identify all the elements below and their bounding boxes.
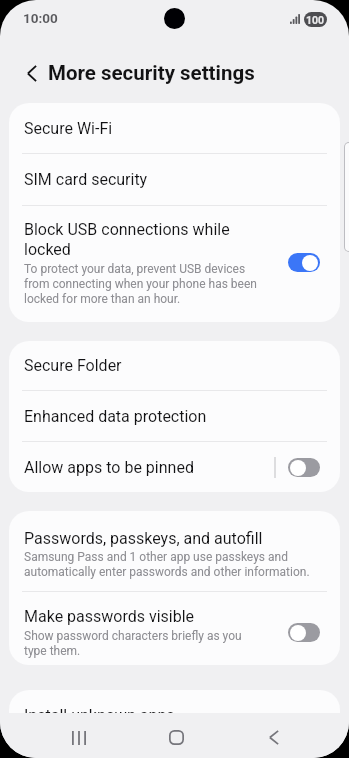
staticText: To protect your data, prevent USB device… (24, 261, 267, 306)
button[interactable]: Back (225, 713, 323, 758)
button[interactable]: Install unknown apps (9, 690, 340, 740)
staticText: Install unknown apps (24, 706, 175, 725)
staticText: Make passwords visible (24, 606, 195, 626)
button[interactable]: On (288, 253, 320, 272)
button[interactable]: SIM card security (9, 154, 340, 205)
staticText: Block USB connections while locked (24, 219, 267, 259)
button[interactable]: Make passwords visible (9, 592, 340, 665)
staticText: SIM card security (24, 170, 148, 189)
button[interactable]: Enhanced data protection (9, 391, 340, 441)
button[interactable]: Navigate up (16, 57, 48, 89)
staticText: More security settings (48, 61, 255, 85)
button[interactable]: Block USB connections while locked (9, 206, 340, 322)
button[interactable]: Recent apps (30, 713, 127, 758)
staticText: Show password characters briefly as you … (24, 628, 267, 658)
button[interactable]: Passwords, passkeys, and autofill (9, 511, 340, 591)
staticText: 100 (306, 14, 325, 26)
button[interactable]: Allow apps to be pinned (276, 442, 340, 492)
button[interactable]: Secure Folder (9, 341, 340, 390)
button[interactable]: Secure Wi-Fi (9, 103, 340, 153)
staticText: Secure Wi-Fi (24, 119, 113, 138)
staticText: 10:00 (23, 10, 58, 26)
button[interactable]: Off (288, 623, 320, 642)
staticText: Samsung Pass and 1 other app use passkey… (24, 549, 320, 579)
staticText: Passwords, passkeys, and autofill (24, 529, 263, 548)
staticText: Allow apps to be pinned (24, 458, 194, 477)
button[interactable]: Off (288, 458, 320, 477)
staticText: Enhanced data protection (24, 407, 207, 426)
button[interactable]: Home (127, 713, 225, 758)
button[interactable]: Allow apps to be pinned (24, 442, 274, 492)
staticText: Secure Folder (24, 356, 122, 375)
